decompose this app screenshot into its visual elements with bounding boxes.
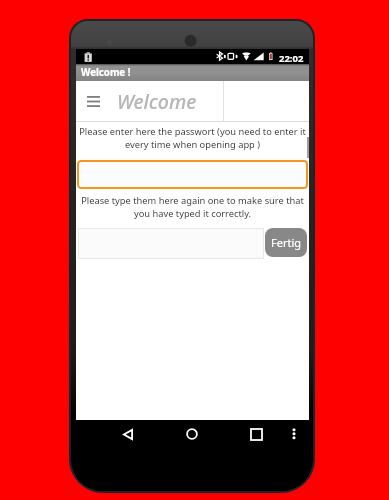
button[interactable]: Home (176, 420, 208, 448)
staticText: Please enter here the passwort (you need… (76, 125, 309, 151)
button[interactable]: Recents (240, 420, 272, 448)
button[interactable]: Password field (77, 160, 308, 189)
button[interactable]: Fertig (265, 228, 307, 257)
staticText: 22:02 (279, 52, 304, 65)
button[interactable]: Back (112, 420, 144, 448)
staticText: Fertig (271, 235, 302, 250)
staticText: Welcome (117, 88, 197, 115)
button[interactable]: More options (283, 420, 305, 448)
button[interactable]: Menu (79, 81, 107, 119)
button[interactable]: Repeat password field (78, 228, 264, 259)
staticText: Welcome ! (81, 66, 131, 79)
staticText: Please type them here again one to make … (76, 194, 309, 220)
